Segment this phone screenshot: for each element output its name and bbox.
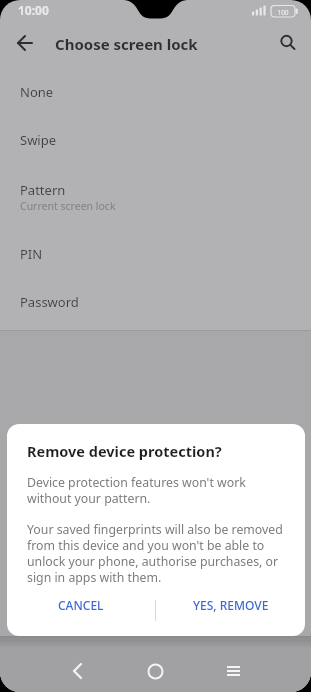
staticText: Device protection features won't work wi…	[27, 474, 246, 507]
staticText: CANCEL	[58, 597, 104, 613]
staticText: Current screen lock	[20, 199, 116, 213]
button[interactable]: CANCEL	[7, 583, 155, 627]
button[interactable]	[207, 640, 311, 692]
staticText: 100	[274, 8, 292, 17]
button[interactable]: Pattern	[0, 164, 311, 230]
staticText: YES, REMOVE	[193, 597, 269, 613]
staticText: PIN	[20, 245, 43, 263]
staticText: Choose screen lock	[55, 34, 198, 54]
button[interactable]	[0, 640, 103, 692]
button[interactable]: None	[0, 68, 311, 116]
staticText: Pattern	[20, 181, 66, 199]
button[interactable]: Swipe	[0, 116, 311, 164]
staticText: 10:00	[18, 2, 49, 18]
button[interactable]: PIN	[0, 230, 311, 278]
button[interactable]	[271, 26, 305, 60]
button[interactable]	[8, 26, 42, 60]
button[interactable]: YES, REMOVE	[156, 583, 305, 627]
button[interactable]: Password	[0, 278, 311, 326]
button[interactable]	[103, 640, 207, 692]
staticText: Your saved fingerprints will also be rem…	[27, 521, 283, 586]
staticText: Remove device protection?	[27, 441, 222, 461]
staticText: Password	[20, 293, 79, 311]
staticText: Swipe	[20, 131, 57, 149]
staticText: None	[20, 83, 54, 101]
